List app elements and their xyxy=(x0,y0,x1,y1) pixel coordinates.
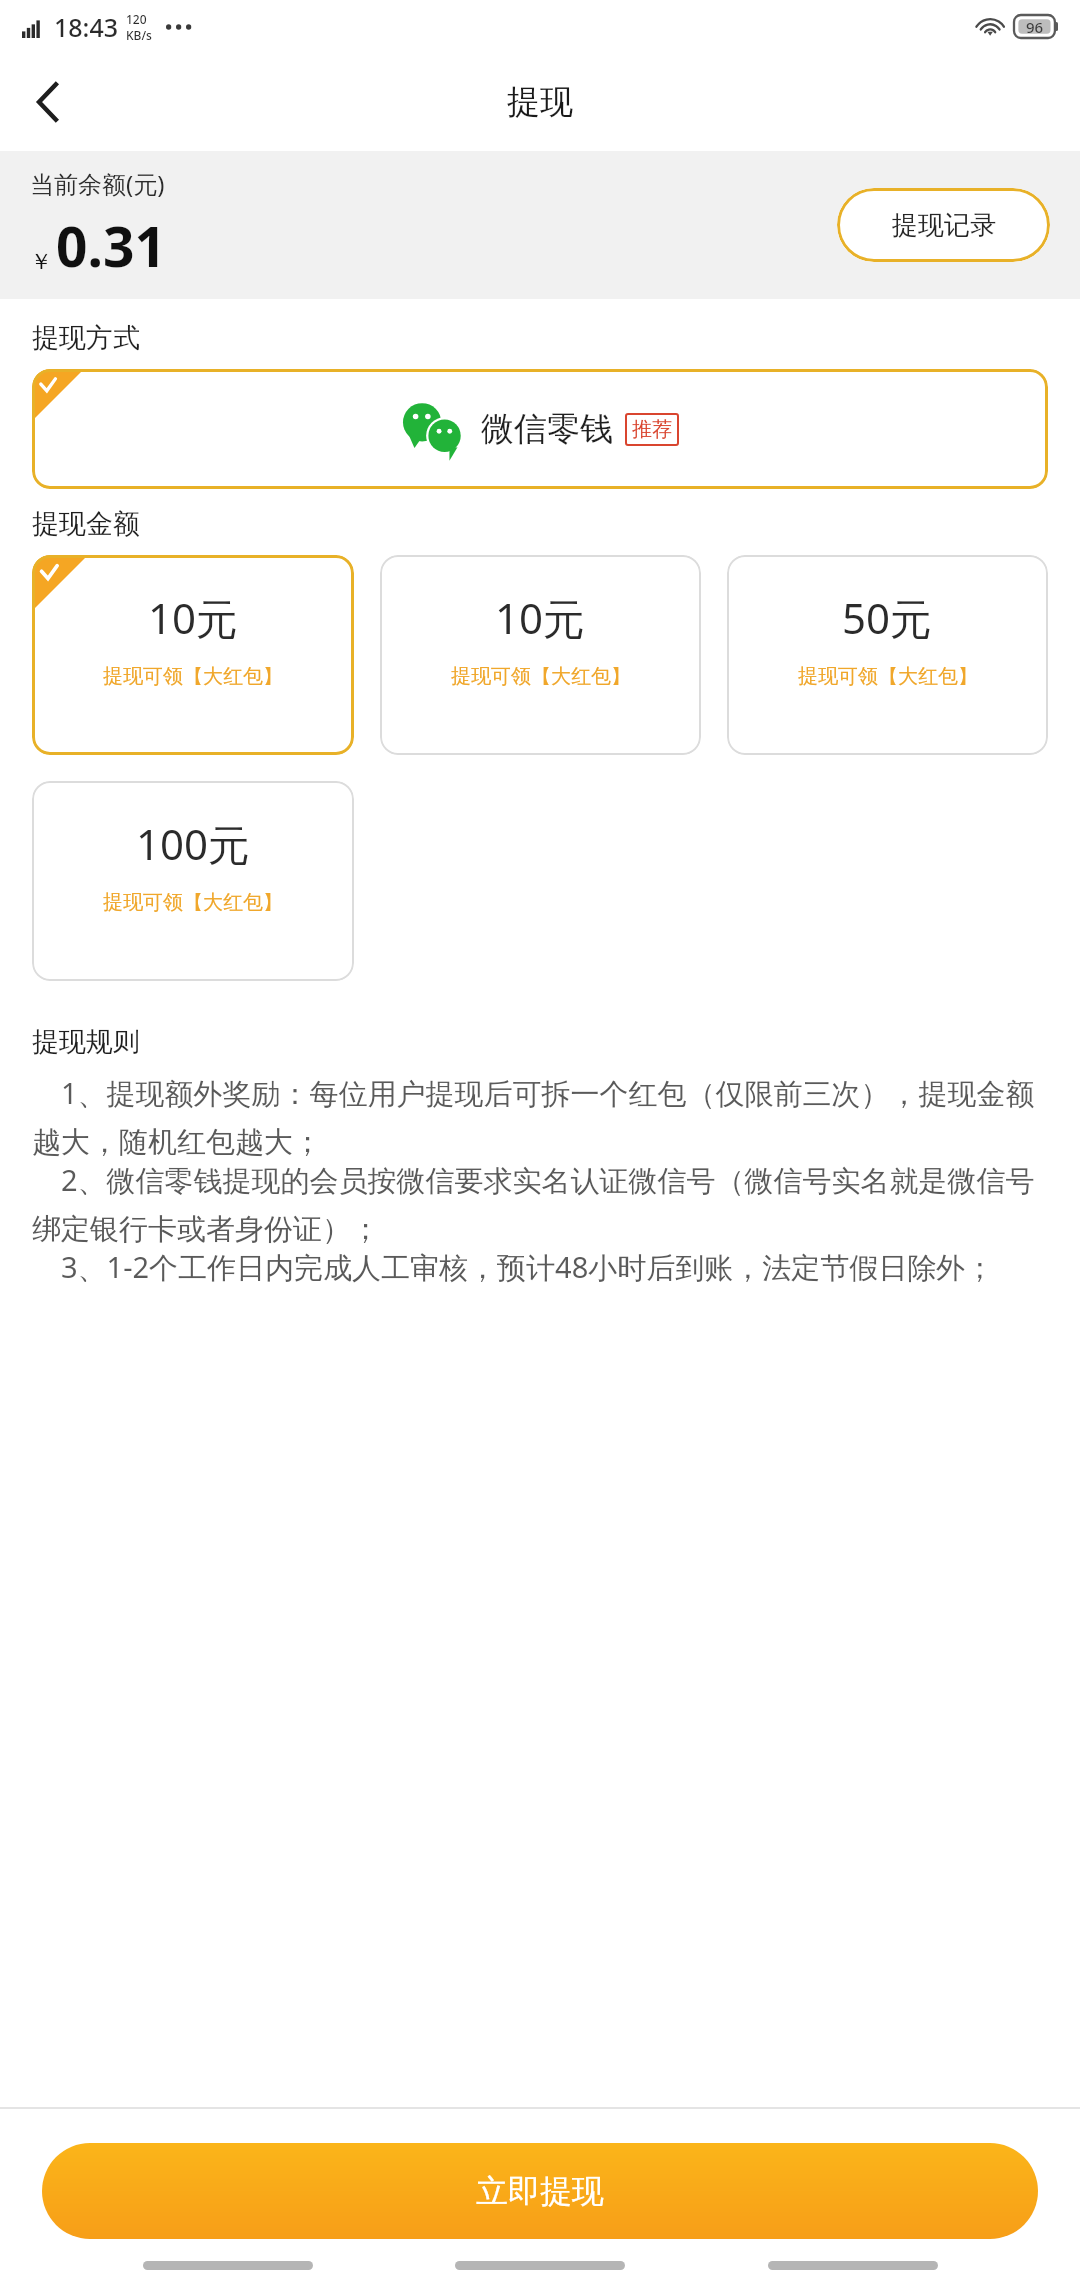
staticText: 提现可领【大红包】 xyxy=(103,890,283,915)
staticText: KB/s xyxy=(126,27,152,43)
staticText: 提现可领【大红包】 xyxy=(798,664,978,689)
staticText: 提现规则 xyxy=(32,1025,140,1059)
staticText: 立即提现 xyxy=(476,2171,604,2211)
staticText: 提现可领【大红包】 xyxy=(103,664,283,689)
staticText: ￥ xyxy=(30,248,52,276)
staticText: 提现可领【大红包】 xyxy=(451,664,631,689)
staticText: 当前余额(元) xyxy=(30,167,165,200)
staticText: 50元 xyxy=(842,589,933,646)
staticText: 96 xyxy=(1026,17,1044,37)
staticText: 3、1-2个工作日内完成人工审核，预计48小时后到账，法定节假日除外； xyxy=(32,1247,995,1287)
staticText: 2、微信零钱提现的会员按微信要求实名认证微信号（微信号实名就是微信号绑定银行卡或… xyxy=(32,1160,1048,1247)
staticText: 提现 xyxy=(507,81,573,123)
staticText: 提现方式 xyxy=(32,321,140,355)
button[interactable]: Back xyxy=(16,70,80,134)
staticText: 10元 xyxy=(495,589,586,646)
staticText: 微信零钱 xyxy=(481,408,613,450)
button[interactable]: 提现记录 xyxy=(837,188,1050,262)
button[interactable]: 立即提现 xyxy=(42,2143,1038,2239)
staticText: 10元 xyxy=(148,589,239,646)
staticText: 推荐 xyxy=(632,417,672,442)
button[interactable]: 50元 xyxy=(727,555,1048,755)
staticText: 18:43 xyxy=(54,10,119,44)
staticText: 提现记录 xyxy=(892,209,996,242)
button[interactable]: 微信零钱 xyxy=(32,369,1048,489)
staticText: 1、提现额外奖励：每位用户提现后可拆一个红包（仅限前三次），提现金额越大，随机红… xyxy=(32,1073,1048,1160)
button[interactable]: 10元 xyxy=(32,555,354,755)
staticText: 提现金额 xyxy=(32,507,140,541)
staticText: 100元 xyxy=(136,815,251,872)
staticText: 120 xyxy=(126,11,147,27)
staticText: 0.31 xyxy=(56,208,166,283)
button[interactable]: 10元 xyxy=(380,555,701,755)
button[interactable]: 100元 xyxy=(32,781,354,981)
